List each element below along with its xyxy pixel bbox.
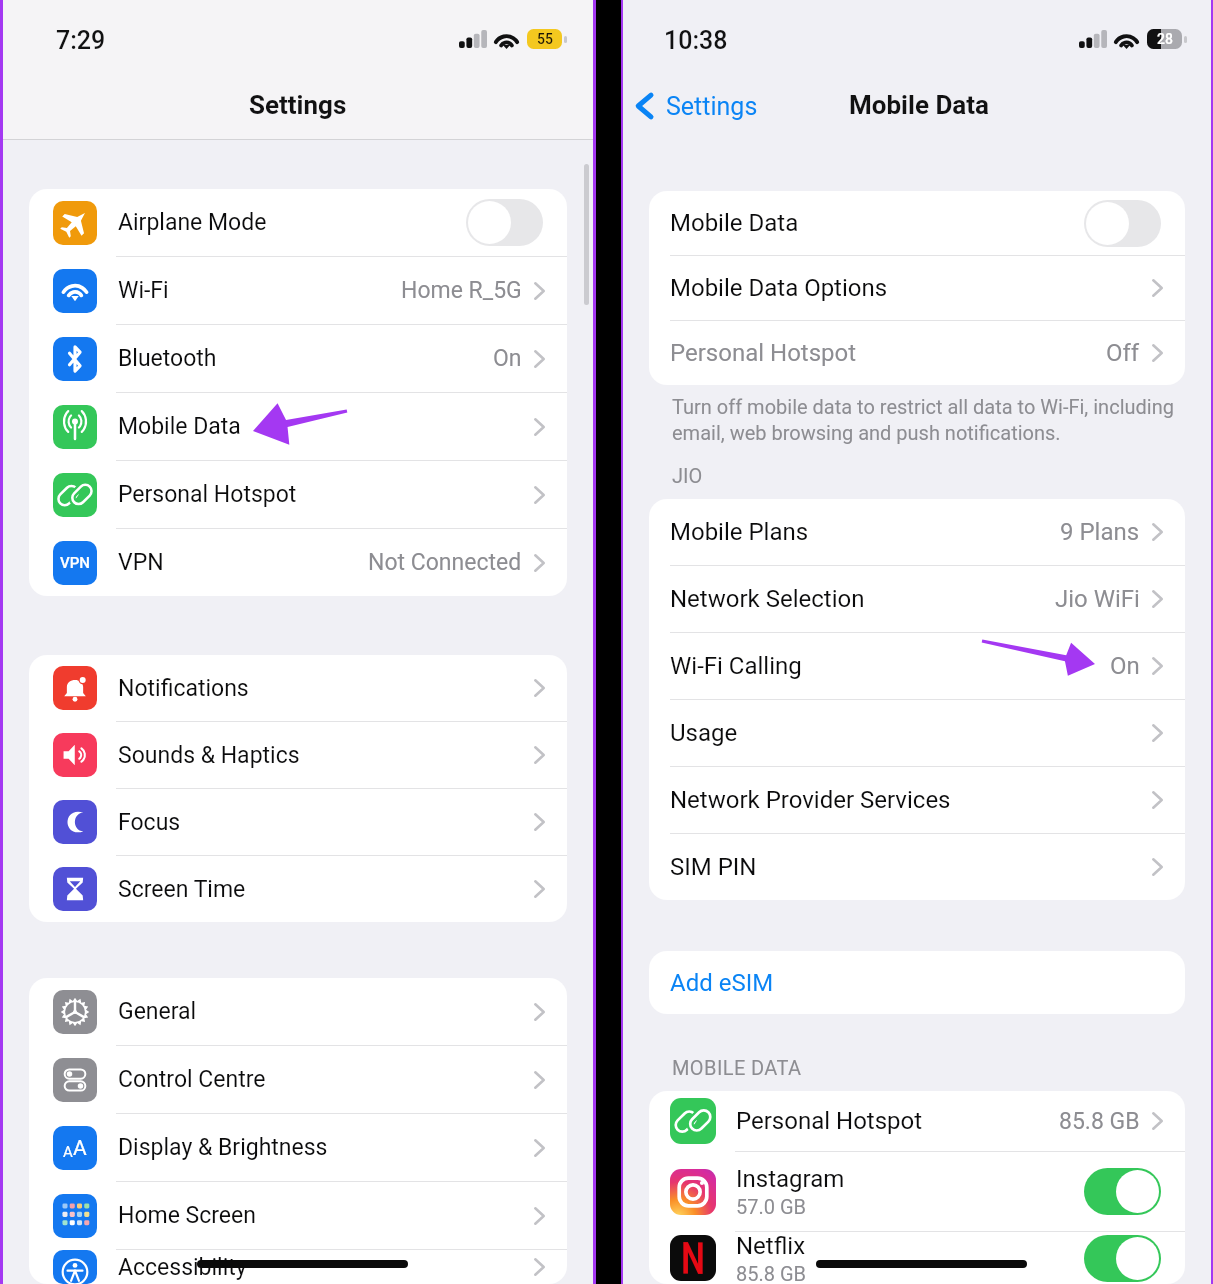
button[interactable]: A	[29, 1114, 567, 1182]
button[interactable]: Netflix	[649, 1232, 1185, 1284]
button[interactable]: Back	[631, 88, 762, 124]
staticText: 85.8 GB	[1059, 1108, 1140, 1135]
staticText: VPN	[60, 554, 90, 572]
button[interactable]: Instagram	[649, 1152, 1185, 1232]
button[interactable]: Wi-Fi	[29, 257, 567, 325]
staticText: On	[1110, 652, 1140, 680]
staticText: Network Selection	[670, 585, 1055, 613]
button[interactable]: Network Provider Services	[649, 767, 1185, 834]
staticText: Netflix	[736, 1232, 806, 1260]
staticText: Turn off mobile data to restrict all dat…	[672, 395, 1187, 444]
button[interactable]: Accessibility	[29, 1250, 567, 1284]
staticText: A	[73, 1136, 87, 1161]
button[interactable]: Toggle off	[466, 199, 543, 246]
staticText: Screen Time	[118, 876, 534, 903]
staticText: Personal Hotspot	[736, 1107, 923, 1135]
staticText: Mobile Data	[849, 90, 990, 120]
staticText: Accessibility	[118, 1254, 534, 1281]
staticText: Usage	[670, 719, 1152, 747]
button[interactable]: Airplane Mode	[29, 189, 567, 257]
button[interactable]: Home Screen	[29, 1182, 567, 1250]
staticText: General	[118, 998, 534, 1025]
button[interactable]: Screen Time	[29, 856, 567, 922]
other: Back	[635, 90, 655, 122]
button[interactable]: Notifications	[29, 655, 567, 722]
button[interactable]: Mobile Plans	[649, 499, 1185, 566]
staticText: Settings	[249, 90, 347, 120]
button[interactable]: Toggle on	[1084, 1235, 1161, 1282]
staticText: SIM PIN	[670, 853, 1152, 881]
staticText: Bluetooth	[118, 345, 493, 372]
staticText: 85.8 GB	[736, 1262, 807, 1284]
staticText: Wi-Fi	[118, 277, 401, 304]
staticText: Home R_5G	[401, 277, 522, 304]
button[interactable]: Toggle off	[1084, 200, 1161, 247]
staticText: Notifications	[118, 675, 534, 702]
staticText: Mobile Data Options	[670, 274, 1152, 302]
staticText: 55	[537, 31, 553, 47]
button[interactable]: VPN	[29, 529, 567, 596]
button[interactable]: Mobile Data Options	[649, 256, 1185, 321]
staticText: 9 Plans	[1060, 518, 1140, 546]
staticText: 7:29	[56, 26, 106, 55]
staticText: 10:38	[664, 26, 728, 55]
staticText: Mobile Data	[670, 209, 1084, 237]
staticText: Control Centre	[118, 1066, 534, 1093]
button[interactable]: Mobile Data	[649, 191, 1185, 256]
staticText: Not Connected	[368, 549, 522, 576]
staticText: A	[63, 1143, 73, 1161]
staticText: MOBILE DATA	[672, 1056, 802, 1079]
button[interactable]: Usage	[649, 700, 1185, 767]
staticText: Display & Brightness	[118, 1134, 534, 1161]
staticText: Jio WiFi	[1055, 585, 1140, 613]
staticText: Wi-Fi Calling	[670, 652, 1110, 680]
staticText: 57.0 GB	[736, 1195, 807, 1218]
staticText: Airplane Mode	[118, 209, 466, 236]
staticText: Off	[1106, 339, 1140, 367]
staticText: Focus	[118, 809, 534, 836]
staticText: Personal Hotspot	[118, 481, 534, 508]
button[interactable]: Wi-Fi Calling	[649, 633, 1185, 700]
button[interactable]: Personal Hotspot	[649, 321, 1185, 385]
button[interactable]: Control Centre	[29, 1046, 567, 1114]
button[interactable]: General	[29, 978, 567, 1046]
staticText: On	[493, 345, 522, 372]
staticText: 28	[1157, 31, 1173, 47]
staticText: VPN	[118, 549, 368, 576]
button[interactable]: Personal Hotspot	[29, 461, 567, 529]
staticText: Mobile Plans	[670, 518, 1060, 546]
button[interactable]: Mobile Data	[29, 393, 567, 461]
button[interactable]: Personal Hotspot	[649, 1091, 1185, 1152]
staticText: Home Screen	[118, 1202, 534, 1229]
button[interactable]: Network Selection	[649, 566, 1185, 633]
staticText: Network Provider Services	[670, 786, 1152, 814]
staticText: JIO	[672, 464, 703, 487]
staticText: Add eSIM	[670, 969, 774, 997]
staticText: Sounds & Haptics	[118, 742, 534, 769]
button[interactable]: SIM PIN	[649, 834, 1185, 900]
button[interactable]: Bluetooth	[29, 325, 567, 393]
button[interactable]: Sounds & Haptics	[29, 722, 567, 789]
button[interactable]: Focus	[29, 789, 567, 856]
button[interactable]: Add eSIM	[649, 951, 1185, 1014]
staticText: Mobile Data	[118, 413, 534, 440]
button[interactable]: Toggle on	[1084, 1168, 1161, 1215]
staticText: Settings	[666, 92, 758, 121]
staticText: Instagram	[736, 1165, 845, 1193]
staticText: Personal Hotspot	[670, 339, 1106, 367]
